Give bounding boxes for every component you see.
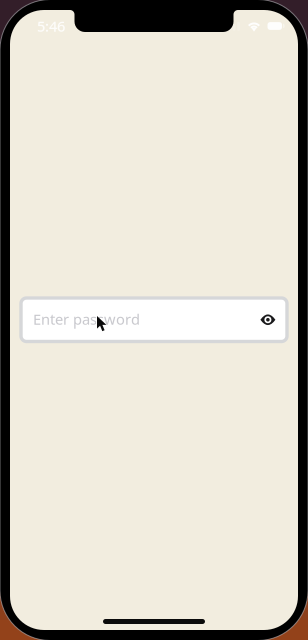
staticText: 5:46 [37, 16, 65, 36]
staticText: Enter password [33, 309, 140, 329]
button[interactable]: Enter password [21, 298, 287, 341]
